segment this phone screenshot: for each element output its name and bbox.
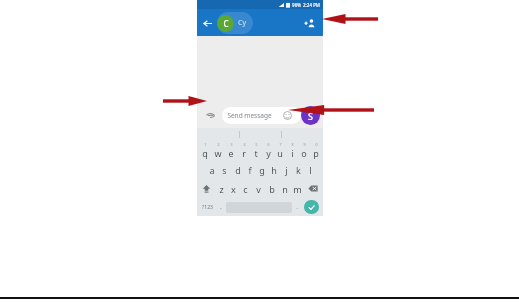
button[interactable]: C — [217, 12, 253, 34]
button[interactable]: a — [205, 160, 218, 179]
staticText: c — [243, 183, 248, 195]
staticText: x — [231, 183, 236, 195]
staticText: t — [254, 147, 258, 159]
button[interactable]: 6 — [262, 141, 274, 160]
button[interactable]: v — [252, 179, 265, 198]
staticText: y — [266, 147, 271, 159]
staticText: q — [202, 147, 208, 159]
button[interactable]: Shift — [198, 179, 215, 198]
button[interactable]: 2 — [211, 141, 224, 160]
button[interactable]: m — [291, 179, 304, 198]
staticText: 8 — [291, 142, 294, 147]
button[interactable]: 7 — [274, 141, 286, 160]
button[interactable]: 9 — [298, 141, 310, 160]
button[interactable]: h — [268, 160, 280, 179]
staticText: j — [285, 164, 288, 176]
staticText: h — [271, 164, 277, 176]
button[interactable]: d — [231, 160, 244, 179]
staticText: 3 — [230, 142, 233, 147]
staticText: e — [228, 147, 234, 159]
staticText: n — [282, 183, 288, 195]
staticText: p — [313, 147, 319, 159]
button[interactable]: Attach — [201, 106, 219, 124]
button[interactable]: l — [304, 160, 316, 179]
staticText: l — [309, 164, 312, 176]
staticText: 0 — [315, 142, 318, 147]
button[interactable]: 3 — [224, 141, 237, 160]
staticText: 9 — [303, 142, 306, 147]
staticText: . — [296, 203, 298, 211]
staticText: 7 — [279, 142, 282, 147]
staticText: Cy — [238, 18, 246, 28]
button[interactable]: j — [280, 160, 292, 179]
button[interactable]: Back — [197, 13, 217, 33]
button[interactable]: Send — [304, 200, 319, 214]
button[interactable]: f — [244, 160, 256, 179]
staticText: s — [222, 164, 227, 176]
staticText: C — [223, 18, 229, 29]
button[interactable]: ?123 — [199, 200, 216, 214]
staticText: v — [256, 183, 261, 195]
staticText: f — [248, 164, 252, 176]
staticText: i — [291, 147, 294, 159]
button[interactable]: Send message — [222, 107, 301, 124]
staticText: , — [220, 203, 222, 211]
button[interactable]: z — [215, 179, 227, 198]
staticText: S — [308, 110, 313, 122]
staticText: 4 — [243, 142, 246, 147]
staticText: z — [219, 183, 224, 195]
staticText: 6 — [267, 142, 270, 147]
button[interactable]: b — [265, 179, 278, 198]
button[interactable]: c — [239, 179, 252, 198]
staticText: m — [293, 183, 302, 195]
staticText: w — [214, 147, 222, 159]
button[interactable]: 5 — [250, 141, 262, 160]
staticText: a — [209, 164, 215, 176]
staticText: u — [277, 147, 283, 159]
staticText: 5 — [255, 142, 258, 147]
staticText: g — [259, 164, 265, 176]
staticText: r — [242, 147, 246, 159]
button[interactable]: , — [216, 200, 226, 214]
button[interactable]: Backspace — [304, 179, 322, 198]
button[interactable]: 1 — [198, 141, 211, 160]
button[interactable]: k — [292, 160, 304, 179]
staticText: Send message — [227, 111, 272, 120]
staticText: 2:24 PM — [303, 2, 320, 8]
staticText: 96% — [292, 2, 301, 8]
button[interactable]: Add people — [299, 12, 321, 34]
staticText: 2 — [217, 142, 220, 147]
button[interactable]: s — [218, 160, 231, 179]
staticText: o — [301, 147, 307, 159]
staticText: k — [296, 164, 301, 176]
staticText: ?123 — [202, 204, 213, 211]
button[interactable]: S — [301, 106, 320, 125]
button[interactable]: g — [256, 160, 268, 179]
button[interactable]: 4 — [237, 141, 250, 160]
button[interactable]: x — [227, 179, 239, 198]
button[interactable]: n — [278, 179, 291, 198]
staticText: d — [235, 164, 241, 176]
staticText: b — [269, 183, 275, 195]
staticText: 1 — [204, 142, 207, 147]
button[interactable]: 8 — [286, 141, 298, 160]
button[interactable]: 0 — [310, 141, 322, 160]
button[interactable]: Emoji — [283, 111, 292, 120]
